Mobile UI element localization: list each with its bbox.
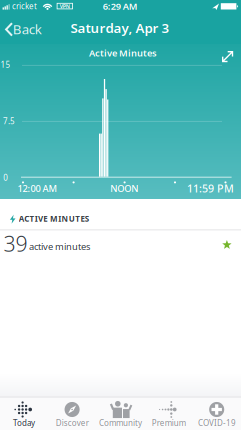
staticText: Discover — [56, 418, 89, 428]
staticText: Today — [13, 418, 35, 428]
staticText: Back — [13, 20, 42, 38]
staticText: Premium — [152, 418, 186, 428]
staticText: NOON — [110, 182, 138, 194]
staticText: 0 — [3, 172, 8, 183]
button[interactable]: 39 — [0, 230, 241, 256]
button[interactable]: COVID-19 — [193, 397, 241, 430]
button[interactable]: Discover — [48, 397, 96, 430]
staticText: Active Minutes — [89, 47, 157, 59]
staticText: 15 — [0, 59, 10, 70]
button[interactable]: Today — [0, 397, 48, 430]
button[interactable]: Premium — [145, 397, 193, 430]
staticText: Community — [99, 418, 142, 428]
staticText: 11:59 PM — [187, 181, 234, 195]
button[interactable]: Community — [96, 397, 145, 430]
button[interactable]: Expand chart — [220, 49, 235, 64]
staticText: active minutes — [29, 240, 90, 253]
staticText: 12:00 AM — [18, 182, 58, 194]
staticText: 6:29 AM — [103, 0, 138, 12]
staticText: cricket — [12, 1, 37, 11]
staticText: 7.5 — [3, 116, 15, 126]
staticText: Saturday, Apr 3 — [70, 19, 169, 37]
button[interactable]: Back — [0, 22, 44, 37]
staticText: 39 — [4, 229, 28, 257]
staticText: ACTIVE MINUTES — [19, 213, 89, 224]
staticText: VPN — [60, 3, 70, 10]
staticText: COVID-19 — [198, 418, 236, 428]
